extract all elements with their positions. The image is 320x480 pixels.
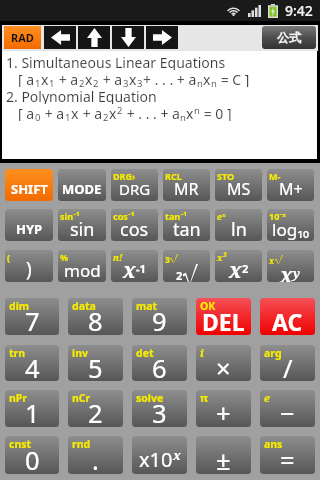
staticText: 1: [25, 396, 40, 427]
staticText: mat: [136, 299, 158, 313]
staticText: det: [136, 346, 154, 360]
staticText: 1. Simultaneous Linear Equations: [6, 53, 226, 70]
staticText: MS: [227, 178, 251, 200]
staticText: 4: [25, 351, 40, 381]
button[interactable]: Left: [44, 26, 76, 49]
staticText: -1: [136, 261, 146, 276]
staticText: x: [186, 104, 194, 121]
staticText: M-: [269, 170, 281, 182]
button[interactable]: 2: [68, 390, 123, 427]
staticText: eˣ: [217, 210, 226, 222]
staticText: rnd: [72, 437, 91, 451]
button[interactable]: =: [260, 436, 315, 474]
staticText: 2: [242, 261, 249, 276]
staticText: AC: [272, 306, 303, 335]
staticText: ): [26, 256, 32, 282]
staticText: RAD: [11, 30, 34, 45]
button[interactable]: Down: [112, 26, 144, 49]
staticText: + . . . + a: [143, 70, 197, 87]
button[interactable]: ×: [196, 345, 251, 381]
staticText: MODE: [62, 180, 102, 198]
staticText: x10: [139, 446, 173, 473]
staticText: 6: [152, 351, 167, 381]
staticText: ×: [216, 351, 231, 381]
staticText: OK: [200, 299, 216, 313]
button[interactable]: 公式: [262, 26, 316, 49]
button[interactable]: RAD: [4, 26, 41, 49]
staticText: 2: [117, 104, 123, 117]
staticText: HYP: [16, 220, 43, 238]
staticText: STO: [217, 170, 235, 182]
staticText: log₁₀: [272, 218, 310, 241]
staticText: %: [60, 251, 69, 263]
staticText: 公式: [277, 30, 301, 45]
staticText: + a: [79, 104, 103, 121]
button[interactable]: 5: [68, 345, 123, 381]
button[interactable]: ln: [215, 209, 262, 241]
staticText: = 0 ]: [200, 104, 232, 121]
button[interactable]: log₁₀: [267, 209, 314, 241]
staticText: + a: [99, 70, 123, 87]
button[interactable]: MODE: [58, 169, 106, 201]
button[interactable]: SHIFT: [5, 169, 53, 201]
staticText: n: [180, 111, 186, 124]
button[interactable]: x: [111, 250, 158, 282]
staticText: x: [85, 70, 93, 87]
button[interactable]: DRG: [111, 169, 158, 201]
button[interactable]: Right: [146, 26, 178, 49]
button[interactable]: −: [260, 390, 315, 427]
staticText: DRG: [119, 179, 151, 199]
staticText: 2: [93, 77, 99, 90]
staticText: 2: [176, 268, 183, 282]
button[interactable]: DEL: [196, 298, 251, 335]
staticText: /: [283, 351, 293, 381]
button[interactable]: .: [68, 436, 123, 474]
button[interactable]: 3: [163, 250, 210, 282]
button[interactable]: /: [260, 345, 315, 381]
button[interactable]: ): [5, 250, 53, 282]
button[interactable]: 9: [132, 298, 187, 335]
staticText: + a: [41, 104, 65, 121]
button[interactable]: 1: [5, 390, 59, 427]
button[interactable]: x: [267, 250, 314, 282]
staticText: 9:42: [285, 1, 313, 20]
staticText: 3: [165, 254, 170, 266]
staticText: M+: [279, 178, 303, 200]
button[interactable]: 6: [132, 345, 187, 381]
button[interactable]: 7: [5, 298, 59, 335]
staticText: cos⁻¹: [113, 210, 135, 222]
button[interactable]: HYP: [5, 209, 53, 241]
staticText: RCL: [165, 170, 182, 182]
button[interactable]: cos: [111, 209, 158, 241]
button[interactable]: ±: [196, 436, 251, 474]
staticText: data: [72, 299, 96, 313]
staticText: 8: [88, 304, 103, 335]
staticText: 5: [88, 351, 103, 381]
button[interactable]: MS: [215, 169, 262, 201]
button[interactable]: AC: [260, 298, 315, 335]
staticText: 7: [25, 304, 40, 335]
button[interactable]: x10: [132, 436, 187, 474]
button[interactable]: mod: [58, 250, 106, 282]
staticText: DEL: [202, 306, 245, 335]
button[interactable]: sin: [58, 209, 106, 241]
staticText: mod: [64, 259, 101, 282]
staticText: SHIFT: [11, 180, 48, 198]
button[interactable]: tan: [163, 209, 210, 241]
staticText: [ a: [18, 70, 35, 87]
staticText: 3: [137, 77, 143, 90]
button[interactable]: MR: [163, 169, 210, 201]
button[interactable]: +: [196, 390, 251, 427]
button[interactable]: M+: [267, 169, 314, 201]
staticText: x: [280, 261, 293, 282]
button[interactable]: 0: [5, 436, 59, 474]
staticText: = C ]: [217, 70, 250, 87]
button[interactable]: 4: [5, 345, 59, 381]
staticText: 1: [49, 77, 55, 90]
staticText: [ a: [18, 104, 35, 121]
button[interactable]: 8: [68, 298, 123, 335]
button[interactable]: Up: [78, 26, 110, 49]
button[interactable]: 3: [132, 390, 187, 427]
button[interactable]: x: [215, 250, 262, 282]
staticText: π: [200, 391, 208, 405]
